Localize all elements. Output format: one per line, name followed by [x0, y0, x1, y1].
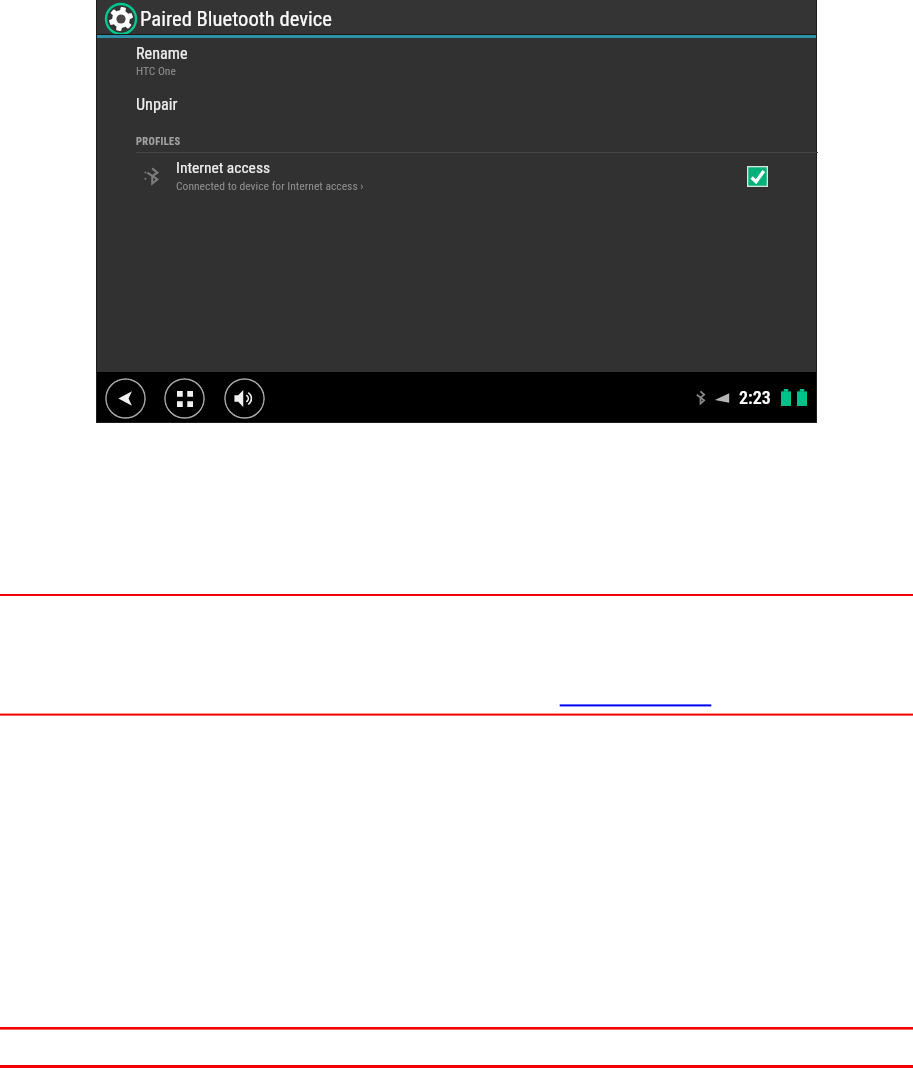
staticText: Rename — [136, 44, 188, 63]
button[interactable]: Volume — [224, 378, 265, 419]
button[interactable]: Internet access enabled — [744, 163, 771, 190]
button[interactable]: Internet access — [97, 156, 816, 196]
button[interactable]: Back — [105, 378, 146, 419]
staticText: 2:23 — [739, 387, 771, 408]
staticText: PROFILES — [136, 135, 181, 147]
button[interactable]: Recent apps — [164, 378, 205, 419]
staticText: HTC One — [136, 64, 176, 77]
button[interactable]: Settings — [103, 1, 139, 37]
staticText: Internet access — [176, 159, 271, 177]
button[interactable]: Rename — [97, 42, 816, 81]
button[interactable]: Unpair — [97, 93, 816, 118]
staticText: Connected to device for Internet access … — [176, 179, 364, 193]
staticText: Unpair — [136, 95, 178, 114]
staticText: Paired Bluetooth device — [140, 7, 332, 31]
